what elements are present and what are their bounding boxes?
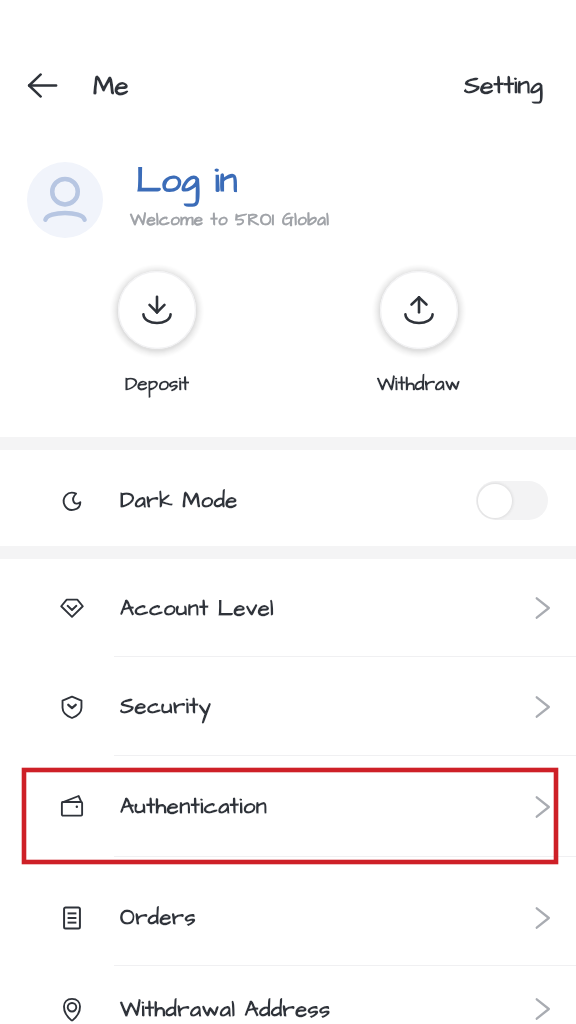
button[interactable]: Setting bbox=[464, 68, 543, 103]
button[interactable]: Orders bbox=[0, 869, 576, 966]
staticText: Deposit bbox=[125, 371, 189, 397]
staticText: Authentication bbox=[120, 791, 268, 822]
button[interactable]: Dark Mode toggle bbox=[476, 481, 548, 520]
staticText: Me bbox=[93, 68, 129, 104]
button[interactable]: Avatar bbox=[27, 162, 103, 238]
button[interactable]: Account Level bbox=[0, 559, 576, 657]
staticText: Account Level bbox=[120, 593, 274, 624]
staticText: Orders bbox=[120, 902, 196, 933]
button[interactable]: Withdrawal Address bbox=[0, 963, 576, 1024]
button[interactable]: Withdraw bbox=[360, 271, 478, 397]
button[interactable]: Deposit bbox=[98, 271, 216, 397]
button[interactable]: Back bbox=[14, 57, 70, 113]
staticText: Withdrawal Address bbox=[120, 994, 331, 1024]
staticText: Dark Mode bbox=[120, 485, 238, 516]
staticText: Security bbox=[120, 691, 212, 722]
button[interactable]: Security bbox=[0, 657, 576, 756]
button[interactable]: Log in bbox=[136, 155, 238, 205]
staticText: Setting bbox=[464, 68, 543, 103]
button[interactable]: Dark Mode bbox=[0, 452, 576, 548]
button[interactable]: Me bbox=[93, 68, 129, 104]
staticText: Withdraw bbox=[377, 371, 461, 397]
staticText: Log in bbox=[136, 155, 238, 205]
button[interactable]: Authentication bbox=[0, 756, 576, 857]
staticText: Welcome to 5ROI Global bbox=[130, 208, 330, 232]
